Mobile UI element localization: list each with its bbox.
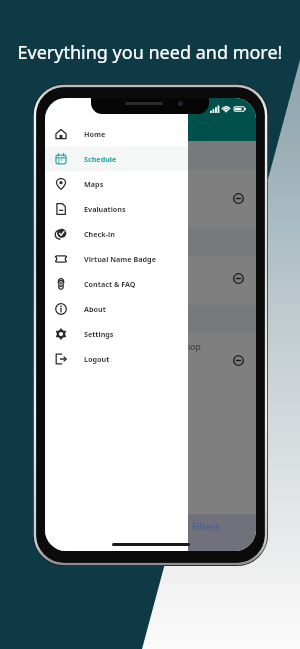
button[interactable]: Settings xyxy=(45,321,188,346)
staticText: Schedule xyxy=(84,154,117,164)
staticText: Logout xyxy=(84,354,110,364)
button[interactable]: Remove xyxy=(233,273,244,284)
staticText: Maps xyxy=(84,179,104,189)
staticText: Home xyxy=(84,129,106,139)
button[interactable]: Virtual Name Badge xyxy=(45,246,188,271)
button[interactable]: Maps xyxy=(45,171,188,196)
staticText: Workshop xyxy=(160,341,201,353)
staticText: Everything you need and more! xyxy=(0,40,300,65)
button[interactable]: Filters xyxy=(192,520,220,533)
button[interactable]: Logout xyxy=(45,346,188,371)
staticText: Settings xyxy=(84,329,114,339)
button[interactable]: Schedule xyxy=(45,146,188,171)
button[interactable]: Evaluations xyxy=(45,196,188,221)
staticText: Check-in xyxy=(84,229,115,239)
staticText: Contact & FAQ xyxy=(84,279,136,289)
button[interactable]: About xyxy=(45,296,188,321)
staticText: About xyxy=(84,304,106,314)
button[interactable]: Contact & FAQ xyxy=(45,271,188,296)
staticText: Virtual Name Badge xyxy=(84,254,156,264)
button[interactable]: Home xyxy=(45,121,188,146)
button[interactable]: Remove xyxy=(233,355,244,366)
staticText: Evaluations xyxy=(84,204,126,214)
button[interactable]: Check-in xyxy=(45,221,188,246)
button[interactable]: Remove xyxy=(233,193,244,204)
